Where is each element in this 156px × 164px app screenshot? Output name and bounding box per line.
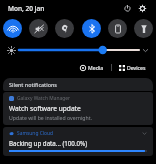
button[interactable]: Location (55, 19, 74, 38)
staticText: Media (88, 64, 104, 71)
button[interactable]: Wi-Fi (3, 19, 22, 38)
staticText: Galaxy Watch Manager (17, 95, 70, 102)
button[interactable]: Power off (121, 2, 134, 15)
staticText: Update will be installed overnight. (9, 114, 93, 121)
button[interactable]: Devices (117, 63, 148, 72)
button[interactable]: Silent notifications (3, 78, 153, 91)
button[interactable]: Flashlight (134, 19, 153, 38)
button[interactable]: Brightness (4, 43, 18, 57)
button[interactable]: Mute sound (29, 19, 48, 38)
staticText: Watch software update (9, 104, 81, 113)
staticText: Silent notifications (9, 81, 57, 88)
button[interactable]: Media (78, 63, 106, 72)
staticText: Devices (127, 64, 146, 71)
staticText: Backing up data... (100.0%) (9, 139, 88, 147)
button[interactable]: Galaxy Watch Manager (3, 92, 153, 125)
button[interactable]: Bluetooth (82, 19, 101, 38)
button[interactable]: Settings (136, 2, 149, 15)
staticText: Samsung Cloud (17, 130, 54, 137)
staticText: Mon, 20 Jan (8, 4, 45, 13)
button[interactable]: Brightness slider (18, 43, 139, 57)
button[interactable]: Auto rotate (108, 19, 127, 38)
button[interactable]: Samsung Cloud (3, 127, 153, 156)
button[interactable]: Expand brightness (139, 44, 152, 57)
